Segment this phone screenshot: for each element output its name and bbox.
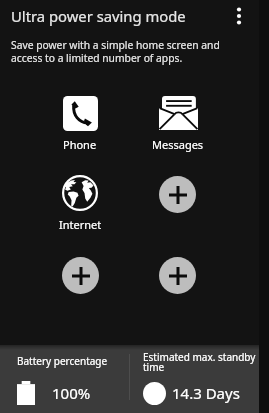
staticText: Phone bbox=[63, 137, 97, 152]
button[interactable]: Battery percentage bbox=[0, 345, 130, 413]
staticText: Messages bbox=[152, 137, 204, 152]
staticText: Battery percentage bbox=[17, 354, 108, 368]
staticText: Internet bbox=[59, 217, 102, 232]
button[interactable]: More options bbox=[223, 0, 255, 31]
button[interactable]: Add app bbox=[62, 257, 99, 294]
button[interactable]: Add app bbox=[159, 257, 196, 294]
staticText: Ultra power saving mode bbox=[11, 6, 223, 26]
button[interactable]: Add app bbox=[159, 176, 196, 213]
button[interactable]: Phone bbox=[46, 91, 114, 151]
staticText: 14.3 Days bbox=[172, 383, 240, 403]
button[interactable]: Messages bbox=[144, 91, 212, 151]
staticText: 100% bbox=[52, 383, 91, 403]
button[interactable]: Internet bbox=[46, 171, 114, 231]
button[interactable]: Estimated max. standby time bbox=[131, 345, 259, 413]
staticText: Save power with a simple home screen and… bbox=[11, 38, 220, 65]
staticText: Estimated max. standby time bbox=[143, 350, 261, 374]
